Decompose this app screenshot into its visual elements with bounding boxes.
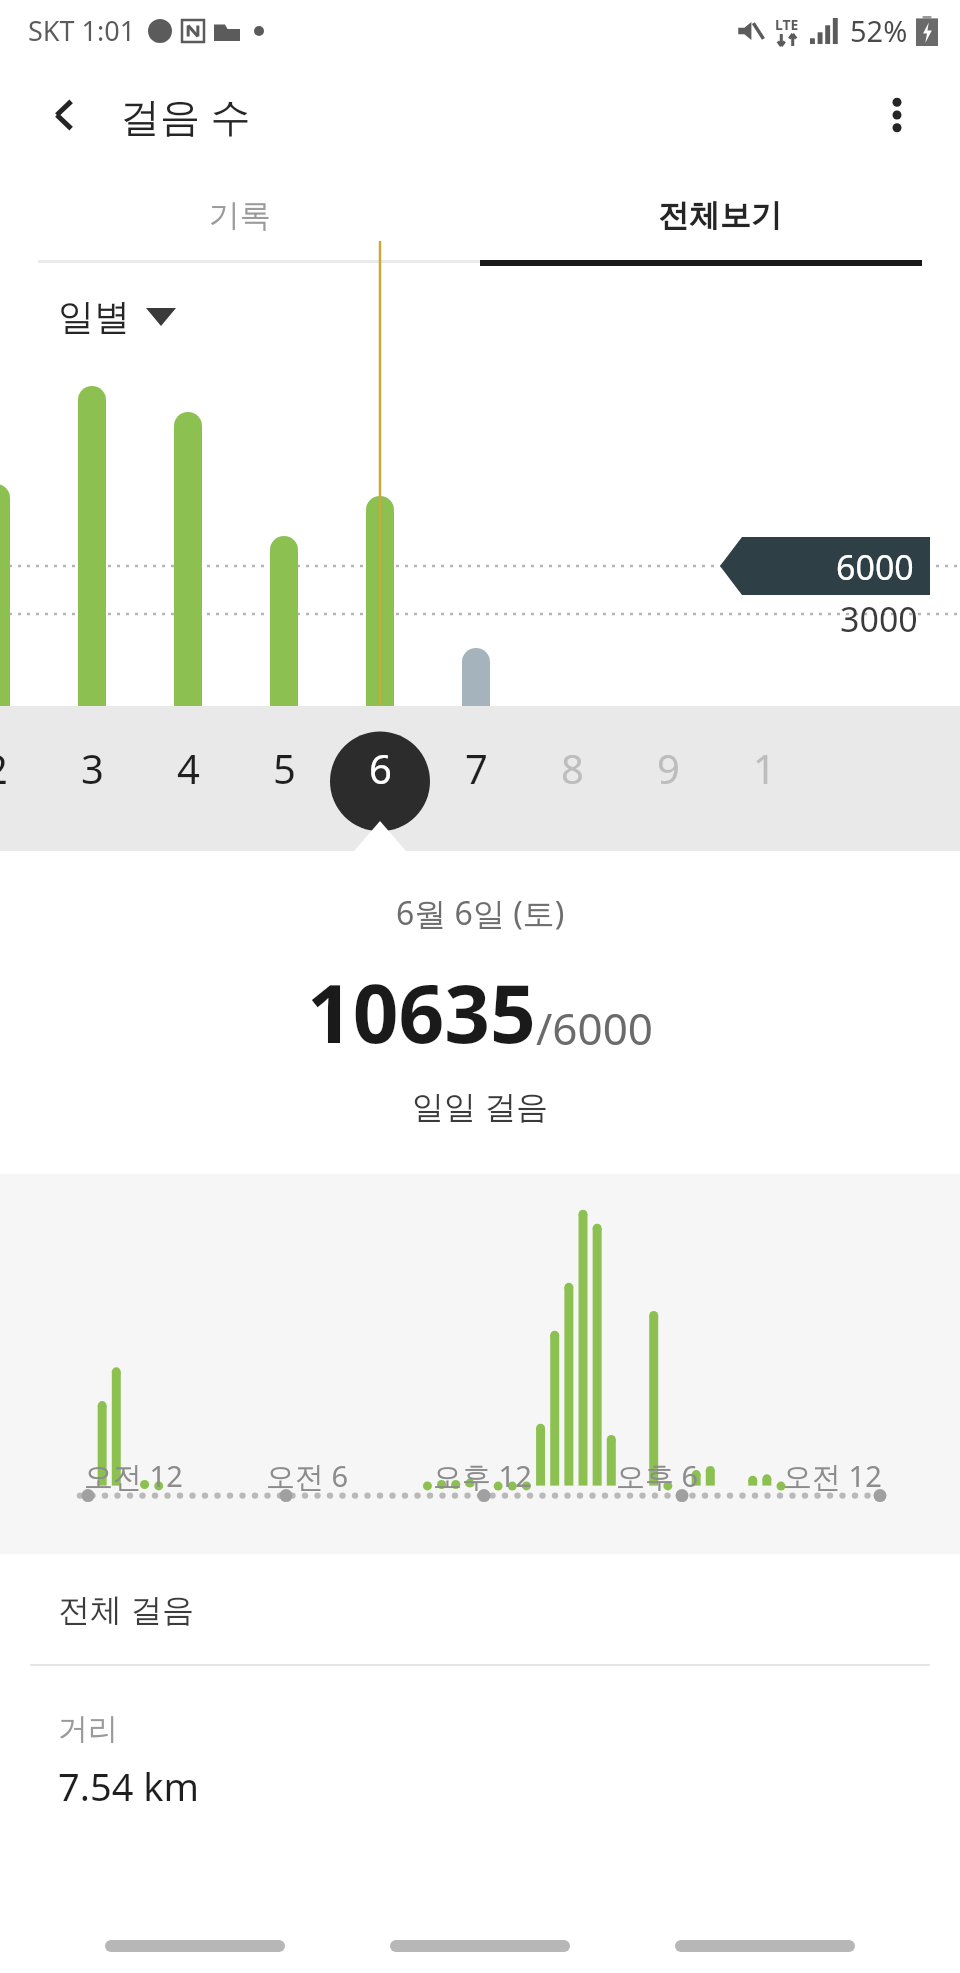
- button[interactable]: 전체보기: [480, 170, 960, 260]
- staticText: 전체보기: [658, 196, 782, 235]
- staticText: 3: [81, 741, 104, 795]
- button[interactable]: 일별: [58, 294, 176, 339]
- staticText: 1: [753, 741, 776, 795]
- staticText: 일별: [58, 294, 130, 339]
- button[interactable]: Navigation: [390, 1926, 570, 1966]
- button[interactable]: 9: [626, 726, 710, 810]
- staticText: SKT 1:01: [28, 12, 136, 49]
- staticText: LTE: [775, 15, 799, 34]
- staticText: /6000: [536, 998, 654, 1058]
- staticText: 4: [177, 741, 200, 795]
- staticText: 3000: [840, 596, 918, 642]
- button[interactable]: 2: [0, 726, 38, 810]
- staticText: 오전 12: [84, 1456, 183, 1496]
- staticText: 오후 12: [433, 1456, 532, 1496]
- staticText: 걸음 수: [120, 88, 251, 143]
- button[interactable]: 5: [242, 726, 326, 810]
- staticText: 오전 12: [783, 1456, 882, 1496]
- button[interactable]: 7: [434, 726, 518, 810]
- staticText: 전체 걸음: [58, 1587, 195, 1631]
- staticText: 7: [465, 741, 488, 795]
- staticText: 6: [369, 741, 392, 795]
- button[interactable]: Navigation: [105, 1926, 285, 1966]
- button[interactable]: 3: [50, 726, 134, 810]
- button[interactable]: 8: [530, 726, 614, 810]
- button[interactable]: Back: [30, 80, 100, 150]
- staticText: 6월 6일 (토): [396, 891, 565, 935]
- staticText: 52%: [850, 11, 908, 50]
- staticText: 5: [273, 741, 296, 795]
- button[interactable]: 기록: [0, 170, 480, 260]
- staticText: 6000: [836, 544, 914, 590]
- button[interactable]: More options: [862, 80, 932, 150]
- button[interactable]: 6: [338, 726, 422, 810]
- staticText: 7.54 km: [58, 1760, 200, 1812]
- staticText: 오전 6: [266, 1456, 349, 1496]
- staticText: 오후 6: [616, 1456, 699, 1496]
- staticText: 9: [657, 741, 680, 795]
- staticText: 거리: [58, 1710, 118, 1748]
- button[interactable]: 1: [722, 726, 806, 810]
- staticText: 기록: [209, 196, 271, 235]
- staticText: 10635: [307, 957, 536, 1066]
- staticText: 8: [561, 741, 584, 795]
- button[interactable]: 4: [146, 726, 230, 810]
- staticText: 2: [0, 741, 8, 795]
- button[interactable]: 전체 걸음: [0, 1554, 960, 1664]
- staticText: 일일 걸음: [412, 1084, 549, 1128]
- button[interactable]: Navigation: [675, 1926, 855, 1966]
- button[interactable]: 거리: [0, 1666, 960, 1812]
